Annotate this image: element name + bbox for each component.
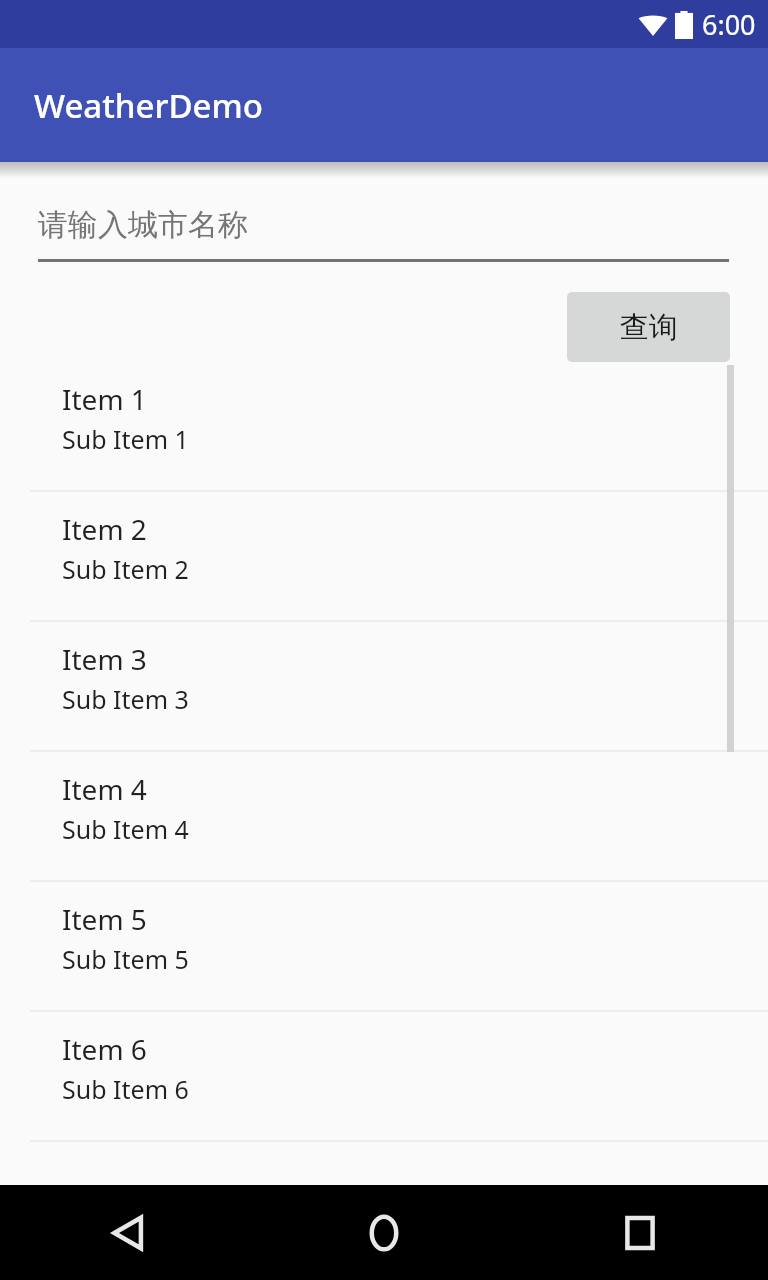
staticText: WeatherDemo xyxy=(34,83,263,128)
staticText: Item 2 xyxy=(62,510,147,548)
button[interactable]: 请输入城市名称 xyxy=(0,178,768,262)
staticText: Item 6 xyxy=(62,1030,147,1068)
button[interactable]: Recent apps xyxy=(512,1185,768,1280)
staticText: Item 1 xyxy=(62,380,147,418)
staticText: 请输入城市名称 xyxy=(38,206,248,244)
button[interactable]: Home xyxy=(256,1185,512,1280)
button[interactable]: Item 3 xyxy=(0,622,768,752)
staticText: Item 5 xyxy=(62,900,147,938)
staticText: 6:00 xyxy=(702,6,756,43)
staticText: Sub Item 6 xyxy=(62,1072,189,1106)
button[interactable]: Item 2 xyxy=(0,492,768,622)
staticText: Sub Item 1 xyxy=(62,422,189,456)
button[interactable]: Back xyxy=(0,1185,256,1280)
button[interactable]: 查询 xyxy=(567,292,730,362)
staticText: 查询 xyxy=(620,309,678,346)
staticText: Item 3 xyxy=(62,640,147,678)
button[interactable]: Item 4 xyxy=(0,752,768,882)
staticText: Item 4 xyxy=(62,770,147,808)
staticText: Sub Item 2 xyxy=(62,552,189,586)
button[interactable]: Item 6 xyxy=(0,1012,768,1142)
button[interactable]: Item 1 xyxy=(0,362,768,492)
staticText: Sub Item 4 xyxy=(62,812,189,846)
staticText: Sub Item 3 xyxy=(62,682,189,716)
staticText: Sub Item 5 xyxy=(62,942,189,976)
button[interactable]: Item 5 xyxy=(0,882,768,1012)
